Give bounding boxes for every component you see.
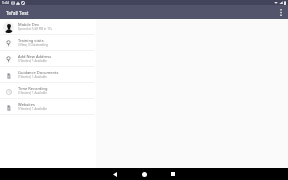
button[interactable]: Mobile Dev (0, 19, 96, 35)
button[interactable]: Home (133, 168, 155, 180)
staticText: 5:44 (2, 0, 9, 5)
button[interactable]: Guidance Documents (0, 67, 96, 83)
staticText: Tefall Test (6, 10, 29, 17)
staticText: Synced at 5:38 PM in 17s (18, 27, 52, 31)
staticText: 0 Started, 1 Available (18, 107, 47, 111)
button[interactable]: Recents (162, 168, 184, 180)
staticText: 0 Started, 1 Available (18, 59, 47, 63)
button[interactable]: More options (274, 5, 288, 19)
button[interactable]: Time Recording (0, 83, 96, 99)
staticText: Training visits (18, 38, 44, 43)
staticText: 0 Started, 1 Available (18, 91, 47, 95)
staticText: Websites (18, 102, 35, 107)
button[interactable]: Websites (0, 99, 96, 115)
button[interactable]: Training visits (0, 35, 96, 51)
button[interactable]: Back (104, 168, 126, 180)
staticText: 3 New, 0 Outstanding (18, 43, 48, 47)
button[interactable]: Add New Address (0, 51, 96, 67)
staticText: Guidance Documents (18, 70, 59, 75)
staticText: Time Recording (18, 86, 48, 91)
staticText: Add New Address (18, 54, 52, 59)
staticText: 0 Started, 1 Available (18, 75, 47, 79)
staticText: Mobile Dev (18, 22, 39, 27)
